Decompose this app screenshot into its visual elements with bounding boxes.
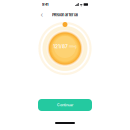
button[interactable]: Back [39, 11, 45, 19]
staticText: Presion arterial [52, 13, 78, 17]
staticText: 121/87 [53, 44, 68, 49]
staticText: ‹ [40, 11, 43, 19]
button[interactable]: Continuar [38, 99, 92, 111]
staticText: Continuar [57, 103, 73, 107]
staticText: mmHg [69, 45, 77, 48]
staticText: 9:41 [42, 2, 48, 7]
